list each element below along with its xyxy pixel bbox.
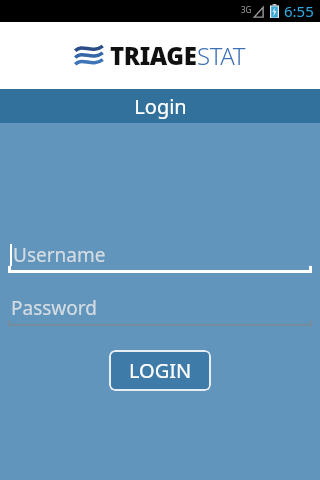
staticText: 3G [241, 4, 252, 15]
button[interactable]: Login [109, 350, 211, 391]
staticText: Password [11, 295, 97, 321]
staticText: TRIAGE [110, 39, 197, 72]
staticText: Login [134, 93, 187, 120]
button[interactable]: Username [8, 237, 312, 273]
staticText: LOGIN [129, 357, 192, 384]
staticText: STAT [197, 39, 246, 72]
button[interactable]: Password [8, 290, 312, 326]
staticText: 6:55 [284, 1, 314, 21]
staticText: Username [13, 242, 106, 268]
